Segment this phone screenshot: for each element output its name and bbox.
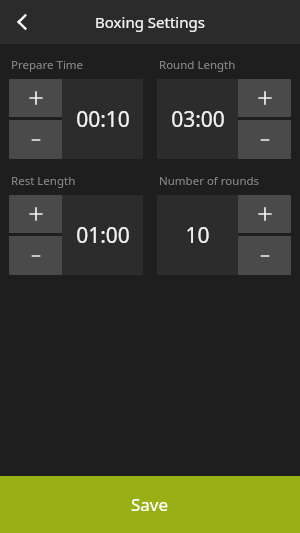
staticText: 01:00 (76, 221, 130, 250)
button[interactable]: Increase Number of rounds (238, 195, 291, 233)
button[interactable]: Increase Rest Length (9, 195, 62, 233)
staticText: 10 (185, 221, 210, 250)
button[interactable]: 10 (157, 195, 291, 275)
staticText: Number of rounds (159, 173, 260, 189)
button[interactable]: Save (0, 476, 300, 533)
button[interactable]: Decrease Rest Length (9, 236, 62, 275)
button[interactable]: Increase Rest Length (9, 195, 143, 275)
button[interactable]: Increase Prepare Time (9, 79, 62, 117)
button[interactable]: Increase Prepare Time (9, 79, 143, 159)
button[interactable]: Decrease Round Length (238, 120, 291, 159)
button[interactable]: Back (4, 2, 44, 42)
staticText: Prepare Time (11, 57, 84, 73)
button[interactable]: 03:00 (157, 79, 291, 159)
button[interactable]: Decrease Number of rounds (238, 236, 291, 275)
staticText: Rest Length (11, 173, 76, 189)
staticText: 00:10 (76, 105, 130, 134)
button[interactable]: Increase Round Length (238, 79, 291, 117)
staticText: Boxing Settings (95, 12, 205, 32)
button[interactable]: Decrease Prepare Time (9, 120, 62, 159)
staticText: Round Length (159, 57, 236, 73)
staticText: 03:00 (171, 105, 225, 134)
staticText: Save (131, 493, 169, 516)
